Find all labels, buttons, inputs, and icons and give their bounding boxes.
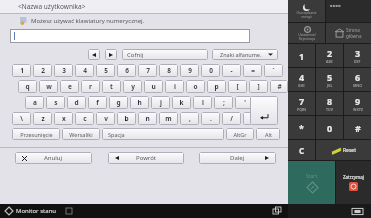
button[interactable]: Wersaliki bbox=[62, 128, 100, 140]
button[interactable]: Ustawienia / Rejestracja bbox=[288, 23, 325, 43]
staticText: Znaki alfanume. bbox=[220, 51, 262, 58]
button[interactable]: b bbox=[117, 112, 136, 125]
button[interactable]: Spacja bbox=[102, 128, 224, 140]
button[interactable]: d bbox=[67, 96, 86, 109]
button[interactable]: Alt bbox=[256, 128, 280, 140]
button[interactable]: 2 bbox=[33, 64, 52, 77]
button[interactable]: 8 bbox=[316, 92, 343, 115]
button[interactable]: 9 bbox=[344, 92, 371, 115]
staticText: Powrót bbox=[136, 154, 157, 162]
button[interactable]: ' bbox=[235, 96, 254, 109]
button[interactable]: AltGr bbox=[226, 128, 254, 140]
button[interactable]: p bbox=[207, 80, 226, 93]
button[interactable]: Reset bbox=[316, 140, 371, 160]
button[interactable]: 1 bbox=[12, 64, 31, 77]
staticText: s bbox=[54, 98, 58, 107]
button[interactable]: 4 bbox=[288, 68, 315, 91]
button[interactable]: m bbox=[159, 112, 178, 125]
button[interactable]: Znaki alfanume. bbox=[212, 49, 278, 60]
staticText: ; bbox=[223, 98, 225, 107]
button[interactable]: v bbox=[96, 112, 115, 125]
staticText: v bbox=[104, 114, 108, 123]
button[interactable]: 0 bbox=[316, 116, 343, 139]
staticText: i bbox=[174, 82, 176, 91]
button[interactable]: ID bbox=[352, 206, 363, 217]
button[interactable]: Oszczędzanie energii bbox=[288, 0, 325, 22]
button[interactable]: g bbox=[109, 96, 128, 109]
staticText: o bbox=[193, 82, 198, 91]
button[interactable]: Cursor right bbox=[105, 49, 117, 60]
button[interactable]: # bbox=[344, 116, 371, 139]
button[interactable]: @ bbox=[243, 112, 262, 125]
staticText: 8 bbox=[167, 66, 171, 75]
staticText: 4 bbox=[299, 71, 305, 83]
button[interactable]: / bbox=[222, 112, 241, 125]
button[interactable]: a bbox=[25, 96, 44, 109]
button[interactable]: [ bbox=[228, 80, 247, 93]
button[interactable]: h bbox=[130, 96, 149, 109]
button[interactable]: 4 bbox=[75, 64, 94, 77]
button[interactable]: Cofnij bbox=[122, 49, 208, 60]
button[interactable]: 3 bbox=[344, 44, 371, 67]
staticText: l bbox=[202, 98, 204, 107]
staticText: Zatrzymaj bbox=[343, 174, 364, 180]
button[interactable]: r bbox=[81, 80, 100, 93]
staticText: Reset bbox=[343, 147, 356, 154]
button[interactable]: = bbox=[243, 64, 262, 77]
button[interactable]: x bbox=[54, 112, 73, 125]
button[interactable]: # bbox=[270, 80, 288, 93]
button[interactable]: Zatrzymaj bbox=[336, 161, 371, 204]
button[interactable]: 7 bbox=[288, 92, 315, 115]
button[interactable]: ` bbox=[264, 64, 283, 77]
button[interactable]: 5 bbox=[316, 68, 343, 91]
button[interactable]: Anuluj bbox=[15, 152, 92, 164]
button[interactable]: Cursor left bbox=[88, 49, 100, 60]
button[interactable]: 6 bbox=[117, 64, 136, 77]
button[interactable]: t bbox=[102, 80, 121, 93]
button[interactable] bbox=[10, 29, 250, 43]
button[interactable]: Jobs bbox=[272, 206, 282, 216]
button[interactable]: s bbox=[46, 96, 65, 109]
button[interactable]: * bbox=[288, 116, 315, 139]
staticText: # bbox=[277, 82, 282, 91]
button[interactable]: 0 bbox=[201, 64, 220, 77]
button[interactable]: Enter bbox=[250, 96, 278, 125]
button[interactable]: 1 bbox=[288, 44, 315, 67]
staticText: 3 bbox=[62, 66, 66, 75]
button[interactable]: 7 bbox=[138, 64, 157, 77]
button[interactable]: k bbox=[172, 96, 191, 109]
button[interactable]: Clear bbox=[288, 140, 315, 160]
button[interactable]: n bbox=[138, 112, 157, 125]
button[interactable]: 9 bbox=[180, 64, 199, 77]
button[interactable]: 3 bbox=[54, 64, 73, 77]
button[interactable]: j bbox=[151, 96, 170, 109]
button[interactable]: ] bbox=[249, 80, 268, 93]
staticText: e bbox=[68, 82, 72, 91]
button[interactable]: Dalej bbox=[199, 152, 276, 164]
button[interactable]: Strona główna bbox=[326, 23, 371, 43]
button[interactable]: \ bbox=[12, 112, 31, 125]
button[interactable]: - bbox=[222, 64, 241, 77]
button[interactable]: u bbox=[144, 80, 163, 93]
button[interactable]: q bbox=[18, 80, 37, 93]
button[interactable]: 5 bbox=[96, 64, 115, 77]
button[interactable]: 6 bbox=[344, 68, 371, 91]
button[interactable]: e bbox=[60, 80, 79, 93]
button[interactable]: . bbox=[201, 112, 220, 125]
button[interactable]: w bbox=[39, 80, 58, 93]
button[interactable]: z bbox=[33, 112, 52, 125]
button[interactable]: ; bbox=[214, 96, 233, 109]
button[interactable]: l bbox=[193, 96, 212, 109]
button[interactable]: Start bbox=[288, 161, 335, 204]
button[interactable]: c bbox=[75, 112, 94, 125]
button[interactable]: o bbox=[186, 80, 205, 93]
button[interactable]: Powrót bbox=[108, 152, 184, 164]
button[interactable]: 8 bbox=[159, 64, 178, 77]
staticText: 0 bbox=[327, 122, 333, 134]
button[interactable]: i bbox=[165, 80, 184, 93]
button[interactable]: 2 bbox=[316, 44, 343, 67]
button[interactable]: f bbox=[88, 96, 107, 109]
button[interactable]: Przesunięcie bbox=[12, 128, 60, 140]
button[interactable]: y bbox=[123, 80, 142, 93]
button[interactable]: , bbox=[180, 112, 199, 125]
